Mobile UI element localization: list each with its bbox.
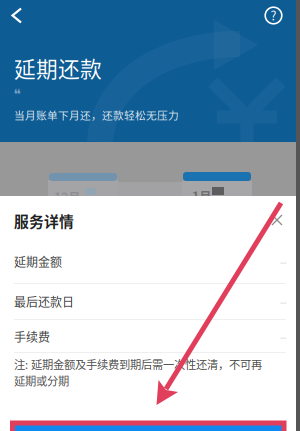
staticText: 延期还款: [14, 52, 102, 83]
staticText: ?: [270, 6, 276, 24]
staticText: 最后还款日: [14, 293, 74, 310]
staticText: --: [280, 329, 286, 344]
staticText: 1月: [192, 187, 212, 205]
button[interactable]: Back: [0, 0, 34, 31]
staticText: 手续费: [14, 328, 50, 345]
staticText: 12月: [54, 188, 81, 206]
staticText: 服务详情: [14, 210, 74, 231]
staticText: 注: 延期金额及手续费到期后需一次性还清，不可再延期或分期: [14, 356, 262, 389]
button[interactable]: Close: [267, 210, 287, 230]
button[interactable]: Help: [259, 1, 287, 29]
staticText: --: [280, 254, 286, 269]
staticText: --: [280, 294, 286, 309]
staticText: ❝: [13, 86, 21, 102]
staticText: 延期金额: [14, 253, 62, 270]
button[interactable]: [14, 424, 283, 431]
staticText: 当月账单下月还，还款轻松无压力: [14, 107, 179, 122]
